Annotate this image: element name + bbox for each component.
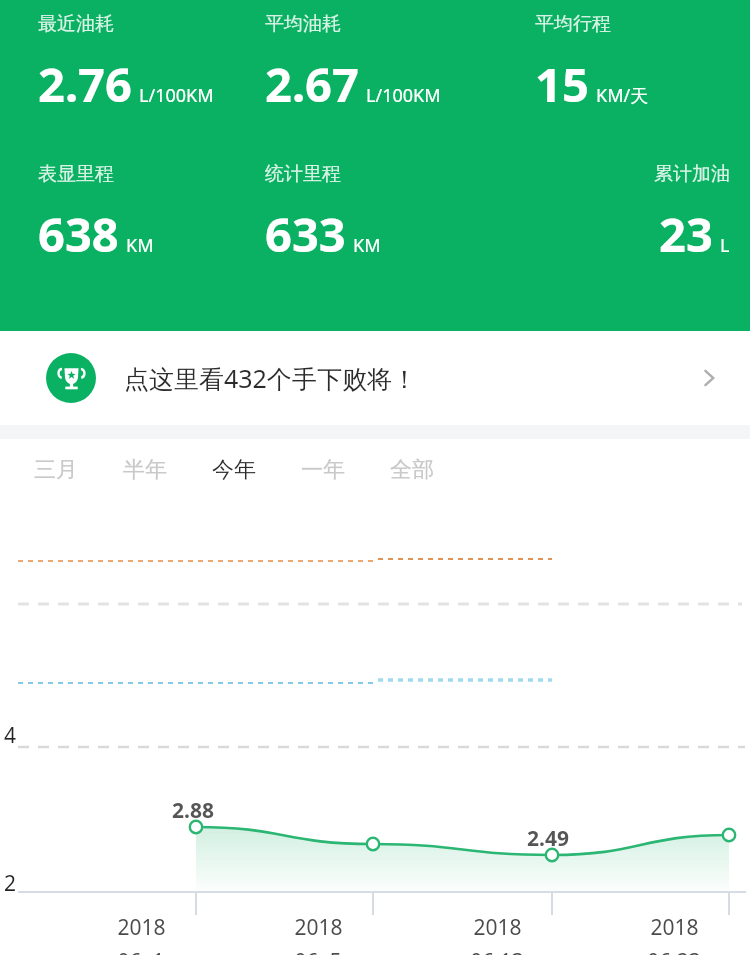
staticText: 06. 1 bbox=[117, 947, 165, 955]
staticText: 4 bbox=[4, 721, 17, 750]
staticText: 累计加油 bbox=[654, 162, 730, 186]
staticText: 2018 bbox=[650, 913, 699, 942]
staticText: 半年 bbox=[123, 456, 167, 484]
staticText: 2.67 bbox=[265, 52, 359, 116]
button[interactable]: 今年 bbox=[206, 448, 262, 492]
staticText: 2.76 bbox=[38, 52, 132, 116]
staticText: 06.13 bbox=[470, 947, 524, 955]
staticText: KM bbox=[126, 233, 154, 258]
staticText: L/100KM bbox=[366, 83, 441, 108]
button[interactable]: 点这里看432个手下败将！ bbox=[0, 331, 750, 425]
staticText: 全部 bbox=[390, 456, 434, 484]
staticText: 2.49 bbox=[527, 824, 569, 853]
staticText: 最近油耗 bbox=[38, 12, 114, 36]
staticText: 06.23 bbox=[647, 947, 701, 955]
staticText: L bbox=[720, 233, 730, 258]
staticText: 633 bbox=[265, 202, 346, 266]
staticText: 06. 5 bbox=[294, 947, 342, 955]
staticText: L/100KM bbox=[139, 83, 214, 108]
staticText: 平均行程 bbox=[535, 12, 611, 36]
staticText: 平均油耗 bbox=[265, 12, 341, 36]
button[interactable]: 半年 bbox=[117, 448, 173, 492]
staticText: 2 bbox=[4, 869, 17, 898]
staticText: 2018 bbox=[473, 913, 522, 942]
staticText: 统计里程 bbox=[265, 162, 341, 186]
button[interactable]: 全部 bbox=[384, 448, 440, 492]
button[interactable]: 一年 bbox=[295, 448, 351, 492]
staticText: 23 bbox=[659, 202, 713, 266]
staticText: 2.88 bbox=[172, 796, 214, 825]
staticText: 今年 bbox=[212, 456, 256, 484]
staticText: 点这里看432个手下败将！ bbox=[124, 361, 417, 395]
staticText: 2018 bbox=[294, 913, 343, 942]
button[interactable]: 三月 bbox=[28, 448, 84, 492]
staticText: KM bbox=[353, 233, 381, 258]
staticText: 一年 bbox=[301, 456, 345, 484]
staticText: 表显里程 bbox=[38, 162, 114, 186]
other: 查看手下败将 bbox=[694, 363, 724, 393]
staticText: 15 bbox=[535, 52, 589, 116]
staticText: KM/天 bbox=[596, 83, 649, 108]
staticText: 2018 bbox=[117, 913, 166, 942]
staticText: 638 bbox=[38, 202, 119, 266]
staticText: 三月 bbox=[34, 456, 78, 484]
